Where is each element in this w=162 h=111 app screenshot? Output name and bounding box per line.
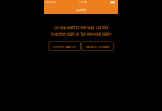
staticText: Carrier	[45, 1, 53, 4]
staticText: machine stats or full workout stats?	[50, 32, 111, 37]
staticText: Autofit	[76, 9, 86, 12]
button[interactable]: Workout Summary	[82, 42, 113, 51]
button[interactable]: Current Machine	[49, 42, 80, 51]
staticText: 3:17 PM	[79, 1, 87, 4]
staticText: Current Machine	[53, 45, 76, 48]
staticText: Do you want to see your current	[54, 25, 108, 30]
staticText: Workout Summary	[86, 45, 109, 48]
